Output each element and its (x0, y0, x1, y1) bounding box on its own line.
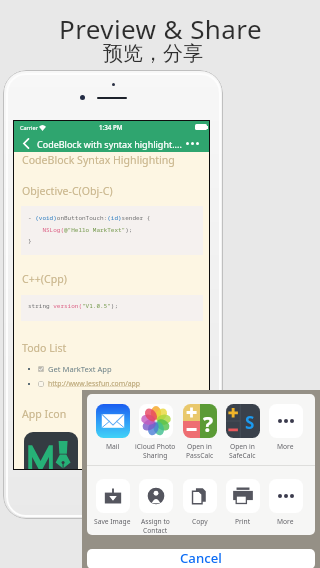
staticText: iCloud Photo (135, 442, 176, 451)
button[interactable]: More (264, 476, 307, 530)
staticText: Contact (143, 526, 168, 535)
staticText: string version("V1.0.5"); (28, 302, 119, 310)
staticText: CodeBlock with syntax highlight.... (37, 138, 182, 150)
staticText: Open in (230, 442, 255, 451)
staticText: S (245, 411, 255, 434)
staticText: SafeCalc (229, 451, 256, 460)
staticText: C++(Cpp) (22, 272, 67, 286)
staticText: 预览，分享 (103, 41, 203, 66)
button[interactable]: ? (178, 401, 221, 455)
staticText: 1:34 PM (99, 123, 123, 131)
button[interactable]: Copy (178, 476, 221, 530)
staticText: Objective-C(Obj-C) (22, 184, 113, 198)
staticText: More (277, 517, 294, 526)
button[interactable]: iCloud Photo (134, 401, 177, 455)
staticText: PassCalc (186, 451, 214, 460)
button[interactable]: Assign to (134, 476, 177, 530)
staticText: Get MarkText App (48, 364, 112, 374)
staticText: CodeBlock Syntax Highlighting (22, 153, 175, 167)
staticText: Cancel (180, 549, 222, 567)
staticText: Save Image (94, 517, 131, 526)
staticText: ? (203, 410, 214, 438)
button[interactable]: Mail (91, 401, 134, 455)
button[interactable]: Cancel (87, 549, 315, 568)
staticText: Assign to (141, 517, 170, 526)
staticText: App Icon (22, 407, 67, 421)
button[interactable]: More options (180, 134, 205, 152)
staticText: - (void)onButtonTouch:(id)sender { (28, 214, 151, 222)
staticText: Sharing (143, 451, 168, 460)
staticText: http://www.lessfun.com/app (48, 379, 141, 388)
button[interactable]: Back (16, 134, 35, 152)
staticText: } (28, 237, 32, 245)
staticText: Mail (106, 442, 120, 451)
staticText: Print (235, 517, 251, 526)
staticText: Open in (187, 442, 212, 451)
staticText: Preview & Share (59, 11, 262, 46)
button[interactable]: Print (221, 476, 264, 530)
button[interactable]: More (264, 401, 307, 455)
staticText: More (277, 442, 294, 451)
staticText: NSLog(@"Hello MarkText"); (28, 226, 133, 234)
staticText: Todo List (22, 341, 67, 355)
button[interactable]: Save Image (91, 476, 134, 530)
staticText: Carrier (20, 124, 38, 131)
staticText: Copy (192, 517, 208, 526)
button[interactable]: S (221, 401, 264, 455)
